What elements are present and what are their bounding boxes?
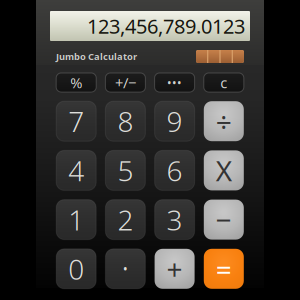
staticText: 3 bbox=[167, 201, 183, 238]
button[interactable]: Clear bbox=[204, 73, 244, 92]
staticText: 8 bbox=[117, 103, 133, 140]
staticText: X bbox=[216, 152, 232, 189]
staticText: 0 bbox=[68, 250, 84, 287]
button[interactable]: Plus bbox=[155, 249, 195, 289]
button[interactable]: 8 bbox=[105, 101, 145, 141]
staticText: 4 bbox=[68, 152, 84, 189]
staticText: 2 bbox=[117, 201, 133, 238]
button[interactable]: 4 bbox=[56, 150, 96, 190]
staticText: ••• bbox=[167, 74, 182, 90]
staticText: 6 bbox=[167, 152, 183, 189]
staticText: − bbox=[216, 201, 232, 238]
button[interactable]: 7 bbox=[56, 101, 96, 141]
button[interactable]: 6 bbox=[155, 150, 195, 190]
staticText: ÷ bbox=[216, 103, 232, 140]
staticText: = bbox=[216, 250, 232, 287]
staticText: • bbox=[122, 257, 129, 280]
button[interactable]: Minus bbox=[204, 200, 244, 240]
staticText: c bbox=[220, 73, 227, 92]
staticText: 1 bbox=[68, 201, 84, 238]
button[interactable]: 1 bbox=[56, 200, 96, 240]
button[interactable]: 0 bbox=[56, 249, 96, 289]
staticText: +/− bbox=[115, 73, 136, 92]
staticText: 5 bbox=[117, 152, 133, 189]
staticText: + bbox=[167, 250, 183, 287]
button[interactable]: Percent bbox=[56, 73, 96, 92]
button[interactable]: Plus minus bbox=[105, 73, 145, 92]
button[interactable]: 5 bbox=[105, 150, 145, 190]
button[interactable]: Divide bbox=[204, 101, 244, 141]
button[interactable]: 3 bbox=[155, 200, 195, 240]
staticText: 123,456,789.0123 bbox=[87, 13, 245, 39]
button[interactable]: 9 bbox=[155, 101, 195, 141]
staticText: % bbox=[70, 73, 82, 92]
button[interactable]: • bbox=[105, 249, 145, 289]
button[interactable]: More bbox=[155, 73, 195, 92]
button[interactable]: Equals bbox=[204, 249, 244, 289]
button[interactable]: 2 bbox=[105, 200, 145, 240]
staticText: 9 bbox=[167, 103, 183, 140]
button[interactable]: Multiply bbox=[204, 150, 244, 190]
staticText: Jumbo Calculator bbox=[56, 50, 137, 63]
staticText: 7 bbox=[68, 103, 84, 140]
